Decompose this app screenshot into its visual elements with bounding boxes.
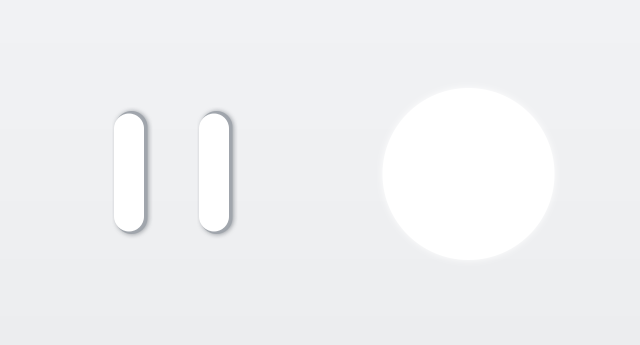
button[interactable]: Pause workout: [102, 101, 241, 243]
button[interactable]: End workout: [372, 78, 564, 270]
